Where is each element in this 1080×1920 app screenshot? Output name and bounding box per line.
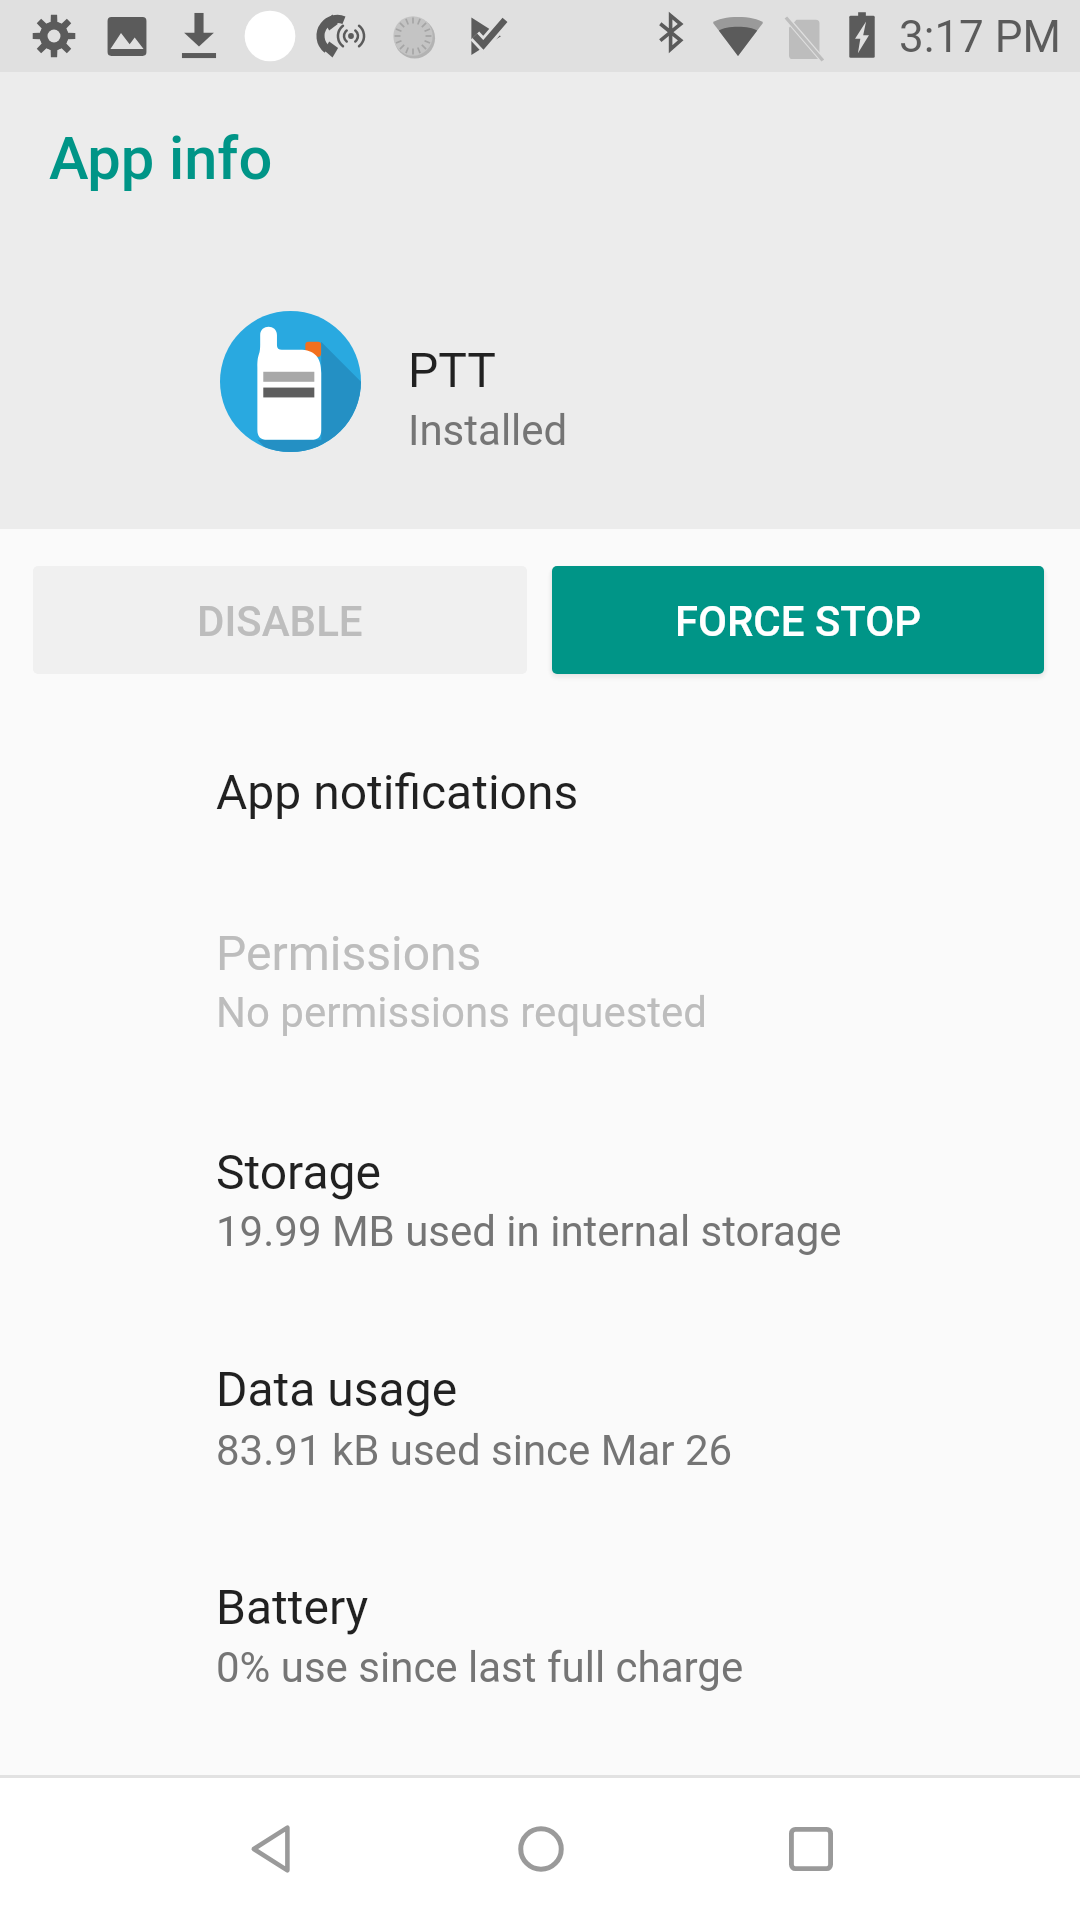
button[interactable]: Recents: [739, 1778, 883, 1920]
button[interactable]: Data usage: [0, 1317, 1080, 1535]
button[interactable]: Storage: [0, 1099, 1080, 1317]
button[interactable]: FORCE STOP: [552, 566, 1044, 674]
button[interactable]: App notifications: [0, 699, 1080, 880]
staticText: No permissions requested: [216, 988, 708, 1037]
staticText: App notifications: [216, 764, 579, 820]
button[interactable]: App info: [0, 0, 1080, 180]
button[interactable]: Permissions: [0, 880, 1080, 1098]
button[interactable]: DISABLE: [33, 566, 527, 674]
staticText: 19.99 MB used in internal storage: [216, 1207, 842, 1256]
staticText: Installed: [408, 406, 568, 455]
staticText: Permissions: [216, 925, 482, 981]
staticText: 83.91 kB used since Mar 26: [216, 1426, 733, 1475]
staticText: DISABLE: [197, 597, 363, 646]
staticText: 0% use since last full charge: [216, 1643, 744, 1692]
staticText: PTT: [408, 342, 496, 398]
staticText: Data usage: [216, 1361, 458, 1417]
staticText: Battery: [216, 1579, 369, 1635]
staticText: 3:17 PM: [899, 11, 1061, 63]
button[interactable]: Back: [201, 1778, 345, 1920]
button[interactable]: Home: [469, 1778, 613, 1920]
button[interactable]: Battery: [0, 1535, 1080, 1753]
staticText: FORCE STOP: [675, 597, 922, 646]
staticText: App info: [49, 124, 273, 194]
staticText: Storage: [216, 1144, 381, 1200]
